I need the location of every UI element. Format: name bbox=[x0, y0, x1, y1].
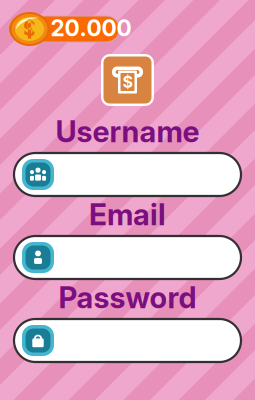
button[interactable]: Withdraw cash bbox=[101, 54, 154, 106]
staticText: 20.000 bbox=[50, 14, 131, 42]
staticText: Username bbox=[55, 114, 199, 149]
button[interactable] bbox=[14, 319, 241, 362]
staticText: Password bbox=[58, 280, 196, 315]
button[interactable] bbox=[14, 153, 241, 196]
button[interactable] bbox=[14, 236, 241, 279]
staticText: $ bbox=[122, 72, 132, 92]
staticText: Email bbox=[89, 197, 166, 232]
